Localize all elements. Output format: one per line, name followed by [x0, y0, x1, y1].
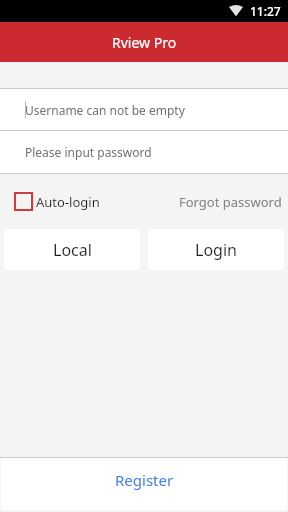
button[interactable]: Auto-login [14, 192, 100, 211]
staticText: 11:27 [250, 3, 281, 19]
staticText: Username can not be empty [25, 102, 185, 118]
staticText: Login [195, 239, 237, 261]
staticText: Forgot password [179, 193, 282, 211]
button[interactable]: Forgot password [179, 193, 288, 211]
button[interactable]: Login [148, 229, 284, 270]
button[interactable]: Please input password [0, 131, 288, 173]
other: Wi-Fi [229, 4, 243, 16]
staticText: Please input password [25, 144, 152, 160]
staticText: Register [115, 470, 174, 490]
staticText: Auto-login [36, 193, 100, 211]
staticText: Local [53, 239, 92, 261]
button[interactable]: Local [4, 229, 140, 270]
button[interactable]: Username can not be empty [0, 89, 288, 130]
button[interactable]: Register [0, 458, 288, 512]
staticText: Rview Pro [112, 33, 177, 52]
